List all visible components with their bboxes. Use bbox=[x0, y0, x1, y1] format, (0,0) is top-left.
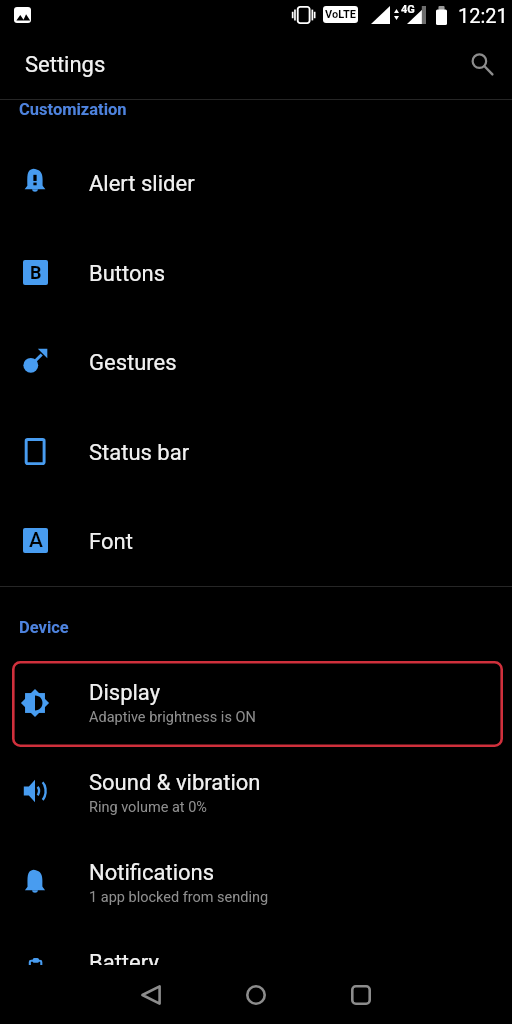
staticText: Approximately 7 hr left bbox=[89, 979, 235, 996]
staticText: Status bar bbox=[89, 440, 190, 466]
button[interactable]: Battery bbox=[0, 928, 512, 1018]
button[interactable]: Notifications bbox=[0, 838, 512, 928]
button[interactable]: Sound & vibration bbox=[0, 748, 512, 838]
staticText: Notifications bbox=[89, 860, 215, 886]
button[interactable]: Back bbox=[121, 970, 181, 1019]
button[interactable]: Home bbox=[226, 970, 286, 1019]
staticText: 1 app blocked from sending bbox=[89, 889, 269, 906]
button[interactable]: Gestures bbox=[0, 316, 512, 406]
staticText: Customization bbox=[19, 100, 127, 119]
button[interactable]: Search bbox=[461, 43, 503, 85]
staticText: Sound & vibration bbox=[89, 770, 261, 796]
staticText: VoLTE bbox=[325, 8, 356, 21]
button[interactable]: A bbox=[0, 495, 512, 585]
staticText: Buttons bbox=[89, 261, 166, 287]
staticText: Ring volume at 0% bbox=[89, 799, 207, 816]
staticText: Battery bbox=[89, 950, 159, 976]
staticText: 4G bbox=[401, 3, 415, 16]
button[interactable]: Alert slider bbox=[0, 137, 512, 227]
staticText: A bbox=[29, 528, 43, 553]
staticText: Device bbox=[19, 618, 69, 637]
button[interactable]: Display bbox=[0, 658, 512, 748]
staticText: Alert slider bbox=[89, 171, 195, 197]
button[interactable]: Status bar bbox=[0, 406, 512, 496]
staticText: B bbox=[30, 262, 42, 283]
button[interactable]: Recents bbox=[331, 970, 391, 1019]
staticText: 12:21 bbox=[458, 4, 508, 27]
staticText: Settings bbox=[25, 52, 106, 78]
button[interactable]: B bbox=[0, 227, 512, 317]
staticText: Adaptive brightness is ON bbox=[89, 709, 256, 726]
staticText: Display bbox=[89, 680, 161, 706]
staticText: Font bbox=[89, 529, 133, 555]
staticText: Gestures bbox=[89, 350, 177, 376]
